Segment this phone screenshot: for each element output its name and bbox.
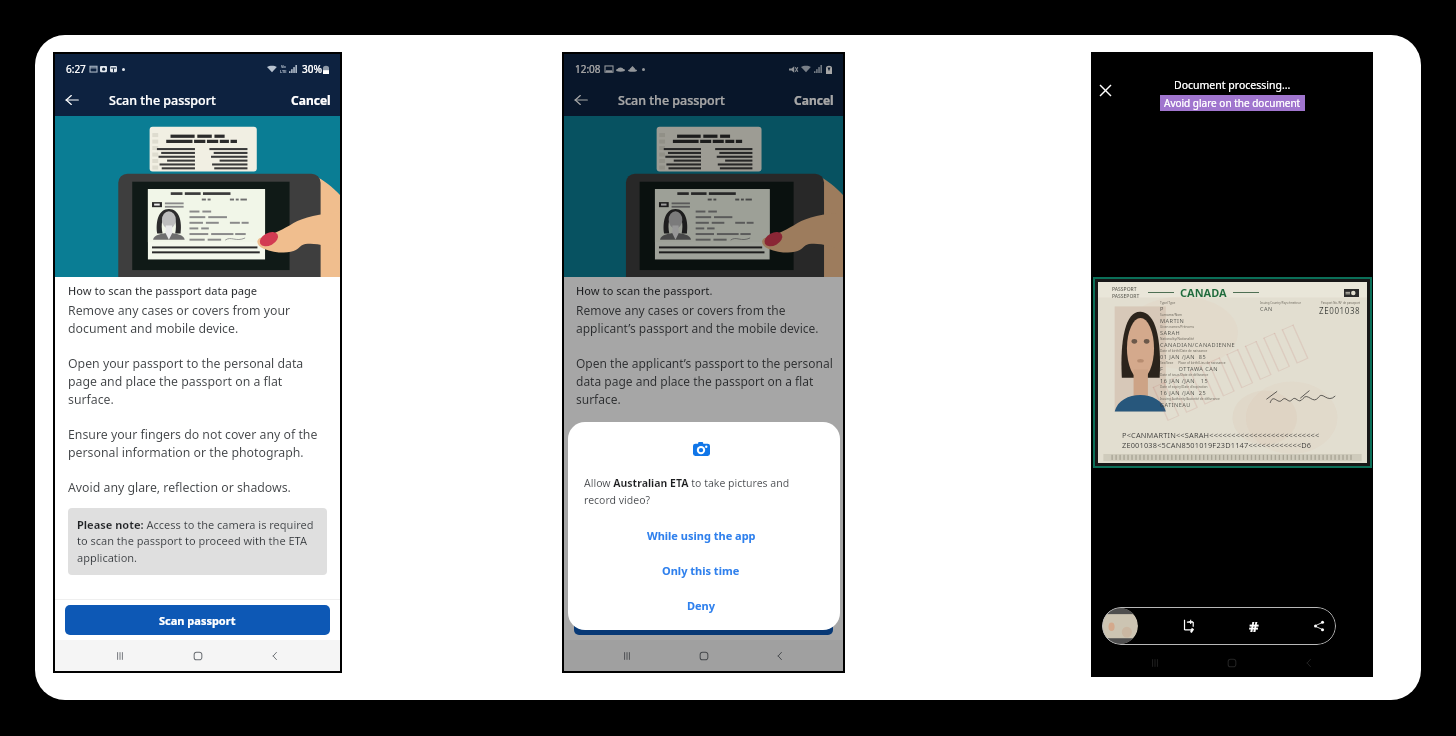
- staticText: Issuing Country/Pays émetteur: [1260, 301, 1301, 305]
- staticText: Ensure your fingers do not cover any of …: [68, 426, 327, 461]
- staticText: Avoid any glare, reflection or shadows.: [68, 479, 291, 496]
- staticText: Passport No./N° de passeport: [1321, 301, 1361, 305]
- button[interactable]: Back: [1296, 650, 1322, 676]
- staticText: Date of birth/Date de naissance: [1160, 349, 1208, 353]
- staticText: ZE001038<5CAN8501019F23D1147<<<<<<<<<<<<…: [1122, 440, 1312, 450]
- button[interactable]: Scan passport: [574, 605, 833, 635]
- button[interactable]: Back: [564, 84, 598, 116]
- staticText: CANADIAN/CANADIENNE: [1160, 341, 1236, 349]
- button[interactable]: Back: [55, 84, 89, 116]
- staticText: MARTIN: [1160, 317, 1185, 325]
- button[interactable]: Home: [1219, 650, 1245, 676]
- button[interactable]: Recents: [1142, 650, 1168, 676]
- staticText: PASSEPORT: [1112, 293, 1140, 300]
- button[interactable]: Last photo: [1102, 608, 1138, 644]
- staticText: GATINEAU: [1160, 401, 1191, 409]
- staticText: 01 JAN /JAN 85: [1160, 353, 1207, 361]
- staticText: 6:27: [66, 62, 86, 76]
- button[interactable]: Close: [1094, 79, 1116, 101]
- staticText: Sex/Sexe Place of birth/Lieu de naissanc…: [1160, 361, 1226, 365]
- staticText: Only this time: [662, 563, 740, 578]
- staticText: Date of issue/Date de délivrance: [1160, 373, 1209, 377]
- staticText: P: [1160, 305, 1164, 313]
- staticText: Remove any cases or covers from the appl…: [576, 302, 834, 337]
- button[interactable]: Back: [262, 643, 288, 669]
- staticText: Please note: Access to the camera is req…: [77, 517, 318, 566]
- staticText: While using the app: [647, 528, 756, 543]
- button[interactable]: Cancel: [282, 84, 340, 116]
- button[interactable]: Home: [691, 643, 717, 669]
- staticText: Open the applicant’s passport to the per…: [576, 355, 834, 408]
- button[interactable]: Tags: [1241, 613, 1267, 639]
- staticText: How to scan the passport.: [576, 283, 713, 298]
- button[interactable]: Recents: [107, 643, 133, 669]
- staticText: Surname/Nom: [1160, 313, 1183, 317]
- staticText: Vo: [281, 64, 286, 69]
- staticText: 16 JAN /JAN 25: [1160, 389, 1207, 397]
- staticText: F OTTAWA CAN: [1160, 365, 1218, 373]
- staticText: Document processing...: [1174, 78, 1291, 92]
- staticText: Deny: [687, 598, 716, 613]
- staticText: Scan the passport: [618, 92, 725, 109]
- staticText: Type/Type: [1160, 301, 1176, 305]
- staticText: Scan passport: [159, 613, 236, 628]
- staticText: Scan the passport: [109, 92, 216, 109]
- staticText: Remove any cases or covers from your doc…: [68, 302, 327, 337]
- staticText: Nationality/Nationalité: [1160, 337, 1194, 341]
- button[interactable]: Cancel: [785, 84, 843, 116]
- staticText: ZE001038: [1319, 305, 1361, 316]
- button[interactable]: Recents: [614, 643, 640, 669]
- staticText: Allow Australian ETA to take pictures an…: [584, 476, 818, 507]
- staticText: LTE: [280, 69, 287, 74]
- button[interactable]: While using the app: [584, 526, 818, 544]
- staticText: Given names/Prénoms: [1160, 325, 1194, 329]
- button[interactable]: Share: [1306, 613, 1332, 639]
- staticText: How to scan the passport data page: [68, 283, 258, 298]
- staticText: PASSPORT: [1112, 286, 1137, 293]
- staticText: Avoid glare on the document: [1164, 96, 1301, 110]
- staticText: P<CANMARTIN<<SARAH<<<<<<<<<<<<<<<<<<<<<<…: [1122, 430, 1320, 440]
- button[interactable]: Scan passport: [65, 605, 330, 635]
- staticText: #: [1249, 616, 1259, 636]
- staticText: Open your passport to the personal data …: [68, 355, 327, 408]
- button[interactable]: Home: [185, 643, 211, 669]
- staticText: Cancel: [794, 92, 834, 108]
- staticText: CAN: [1260, 305, 1273, 312]
- staticText: CANADA: [1180, 285, 1227, 300]
- staticText: 16 JAN /JAN 15: [1160, 377, 1209, 385]
- staticText: Date of expiry/Date d'expiration: [1160, 385, 1208, 389]
- staticText: Issuing Authority/Autorité de délivrance: [1160, 397, 1220, 401]
- button[interactable]: Back: [767, 643, 793, 669]
- button[interactable]: Only this time: [584, 561, 818, 579]
- staticText: 30%: [302, 62, 322, 76]
- button[interactable]: Markup: [1176, 613, 1202, 639]
- staticText: 12:08: [575, 62, 601, 76]
- staticText: SARAH: [1160, 329, 1181, 337]
- button[interactable]: Deny: [584, 596, 818, 614]
- staticText: Cancel: [291, 92, 331, 108]
